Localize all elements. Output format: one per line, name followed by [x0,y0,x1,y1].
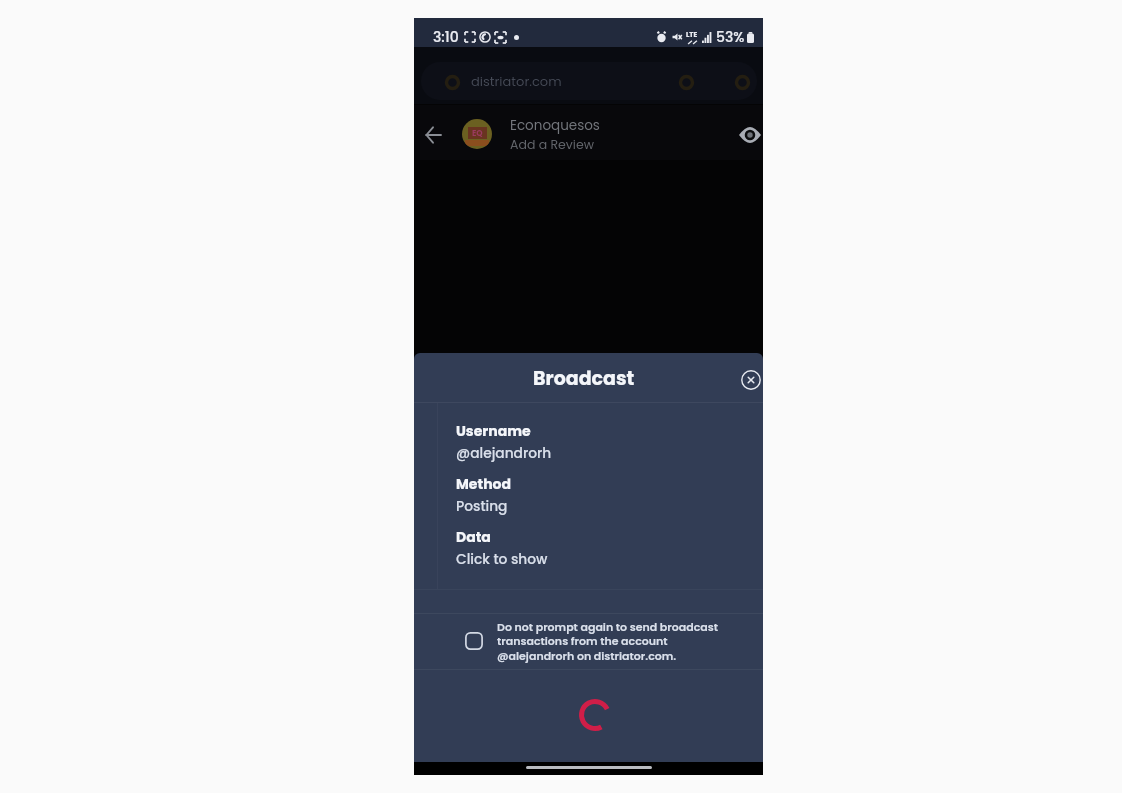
staticText: Data [456,527,491,547]
staticText: Username [456,421,531,441]
staticText: EQ [472,128,483,139]
staticText: Broadcast [533,365,635,392]
button[interactable]: Close [735,364,763,396]
staticText: LTE [686,30,698,40]
staticText: Method [456,474,512,494]
button[interactable]: Method [456,474,726,516]
staticText: Click to show [456,550,548,569]
staticText: @alejandrorh [456,444,552,463]
button[interactable]: Do not prompt again to send broadcast tr… [414,613,763,669]
button[interactable]: Back [415,117,451,153]
staticText: 53% [716,27,745,47]
staticText: distriator.com [471,72,562,90]
staticText: Econoquesos [510,116,600,135]
staticText: 3:10 [433,27,459,47]
staticText: Posting [456,497,508,516]
button[interactable]: Username [456,421,726,463]
staticText: Add a Review [510,136,594,153]
button[interactable]: Data [456,527,726,569]
button[interactable]: Show [732,117,768,153]
staticText: Do not prompt again to send broadcast tr… [497,619,729,663]
